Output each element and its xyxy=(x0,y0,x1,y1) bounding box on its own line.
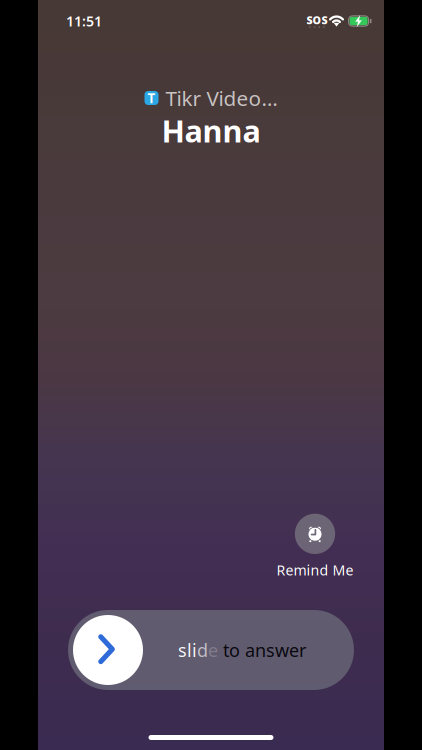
staticText: T xyxy=(147,89,155,107)
button[interactable]: Remind Me xyxy=(276,514,354,576)
staticText: e xyxy=(208,638,218,662)
staticText: d xyxy=(197,638,208,662)
staticText: SOS xyxy=(306,13,327,27)
staticText: to answer xyxy=(218,638,306,662)
staticText: 11:51 xyxy=(66,11,102,31)
staticText: Hanna xyxy=(161,110,260,151)
button[interactable]: Slide to answer xyxy=(73,615,143,685)
staticText: sli xyxy=(178,638,197,662)
staticText: Tikr Video… xyxy=(165,84,277,112)
staticText: Remind Me xyxy=(276,560,353,580)
